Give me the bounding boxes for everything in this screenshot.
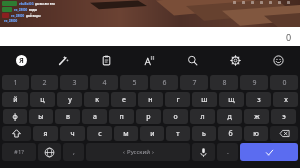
staticText: Я xyxy=(19,56,24,66)
button[interactable]: ы xyxy=(29,109,53,124)
button[interactable]: п xyxy=(109,109,134,124)
staticText: 9 xyxy=(252,78,257,88)
button[interactable]: т xyxy=(166,126,190,141)
staticText: да вы же кто xyxy=(35,2,55,6)
staticText: я xyxy=(43,129,48,139)
button[interactable]: ь xyxy=(192,126,216,141)
button[interactable]: й xyxy=(2,92,28,107)
button[interactable]: и xyxy=(140,126,164,141)
staticText: ex_28000 xyxy=(14,8,28,12)
staticText: н xyxy=(148,95,153,105)
button[interactable]: е xyxy=(111,92,136,107)
button[interactable]: 1 xyxy=(2,75,29,90)
staticText: в xyxy=(66,112,70,122)
button[interactable]: с xyxy=(87,126,112,141)
staticText: ex_28000 xyxy=(11,14,25,18)
button[interactable]: 6 xyxy=(150,75,178,90)
staticText: у xyxy=(68,95,72,105)
button[interactable]: , xyxy=(63,143,84,161)
button[interactable]: Change language xyxy=(38,143,61,161)
staticText: ь xyxy=(202,129,206,139)
staticText: а xyxy=(93,112,97,122)
button[interactable]: Enter xyxy=(240,143,298,161)
button[interactable]: 0 xyxy=(0,27,300,46)
staticText: ф xyxy=(12,112,18,122)
button[interactable]: к xyxy=(84,92,109,107)
staticText: ы xyxy=(38,112,44,122)
staticText: Русский xyxy=(127,148,150,156)
staticText: ю xyxy=(253,129,259,139)
button[interactable]: р xyxy=(136,109,161,124)
button[interactable]: ж xyxy=(244,109,269,124)
button[interactable]: Search xyxy=(171,46,214,74)
button[interactable]: 9 xyxy=(240,75,268,90)
button[interactable]: х xyxy=(273,92,298,107)
button[interactable]: #1? xyxy=(2,143,36,161)
staticText: т xyxy=(176,129,180,139)
button[interactable]: д xyxy=(217,109,242,124)
staticText: э xyxy=(282,112,286,122)
staticText: й xyxy=(13,95,18,105)
button[interactable]: з xyxy=(246,92,271,107)
button[interactable]: Magic xyxy=(42,46,85,74)
button[interactable]: э xyxy=(271,109,296,124)
button[interactable]: 7 xyxy=(180,75,208,90)
button[interactable]: ч xyxy=(60,126,85,141)
button[interactable]: ю xyxy=(244,126,268,141)
button[interactable]: ц xyxy=(30,92,55,107)
staticText: г xyxy=(176,95,180,105)
button[interactable]: б xyxy=(218,126,242,141)
button[interactable]: Backspace xyxy=(270,126,298,141)
staticText: м xyxy=(123,129,129,139)
button[interactable]: 3 xyxy=(60,75,88,90)
staticText: л xyxy=(200,112,205,122)
staticText: з xyxy=(257,95,261,105)
staticText: с xyxy=(98,129,102,139)
staticText: #1? xyxy=(14,148,24,156)
button[interactable]: 2 xyxy=(31,75,58,90)
button[interactable]: л xyxy=(190,109,215,124)
button[interactable]: ‹ xyxy=(86,143,190,161)
button[interactable]: Voice input xyxy=(192,143,215,161)
staticText: vkuBoiGG xyxy=(19,2,34,6)
staticText: , xyxy=(73,147,75,157)
button[interactable]: я xyxy=(33,126,58,141)
staticText: 6 xyxy=(162,78,167,88)
staticText: е xyxy=(122,95,126,105)
button[interactable]: 8 xyxy=(210,75,238,90)
staticText: 0 xyxy=(286,31,292,43)
staticText: д xyxy=(227,112,232,122)
staticText: 8 xyxy=(222,78,227,88)
staticText: 4 xyxy=(102,78,107,88)
button[interactable]: н xyxy=(138,92,163,107)
staticText: ч xyxy=(70,129,75,139)
staticText: дай воды xyxy=(26,14,41,18)
button[interactable]: ш xyxy=(192,92,217,107)
button[interactable]: Shift xyxy=(2,126,31,141)
staticText: ex_28000 xyxy=(4,19,18,23)
staticText: щ xyxy=(228,95,235,105)
button[interactable]: ф xyxy=(3,109,27,124)
button[interactable]: Settings xyxy=(214,46,257,74)
staticText: 3 xyxy=(72,78,77,88)
button[interactable]: г xyxy=(165,92,190,107)
button[interactable]: Assistant xyxy=(0,46,42,74)
button[interactable]: 0 xyxy=(270,75,298,90)
button[interactable]: м xyxy=(114,126,138,141)
button[interactable]: 5 xyxy=(120,75,148,90)
button[interactable]: Emoji xyxy=(257,46,300,74)
staticText: › xyxy=(152,148,154,156)
button[interactable]: Translate xyxy=(128,46,171,74)
button[interactable]: у xyxy=(57,92,82,107)
button[interactable]: в xyxy=(55,109,80,124)
button[interactable]: Clipboard xyxy=(85,46,128,74)
button[interactable]: щ xyxy=(219,92,244,107)
staticText: к xyxy=(95,95,99,105)
staticText: р xyxy=(146,112,151,122)
button[interactable]: а xyxy=(82,109,107,124)
staticText: 1 xyxy=(13,78,18,88)
staticText: ж xyxy=(254,112,260,122)
button[interactable]: о xyxy=(163,109,188,124)
button[interactable]: . xyxy=(217,143,238,161)
button[interactable]: 4 xyxy=(90,75,118,90)
